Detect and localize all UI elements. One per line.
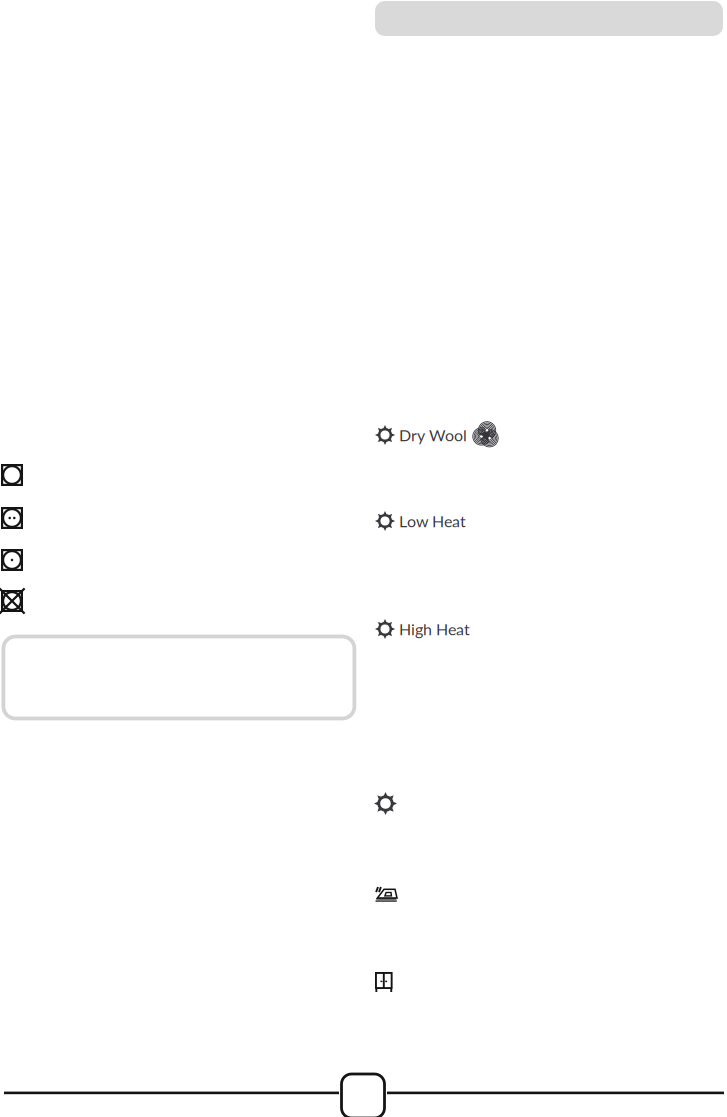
button[interactable]: Low Heat [375, 511, 466, 531]
button[interactable]: Care programme banner [375, 1, 723, 36]
button[interactable]: Dry Wool [375, 422, 497, 448]
button[interactable]: High Heat [375, 619, 470, 639]
staticText: High Heat [399, 619, 470, 639]
staticText: Dry Wool [399, 425, 467, 445]
staticText: Low Heat [399, 511, 466, 531]
button[interactable]: Dry [374, 792, 397, 815]
button[interactable]: Store in wardrobe [375, 972, 393, 992]
button[interactable]: Steam iron [375, 886, 398, 902]
